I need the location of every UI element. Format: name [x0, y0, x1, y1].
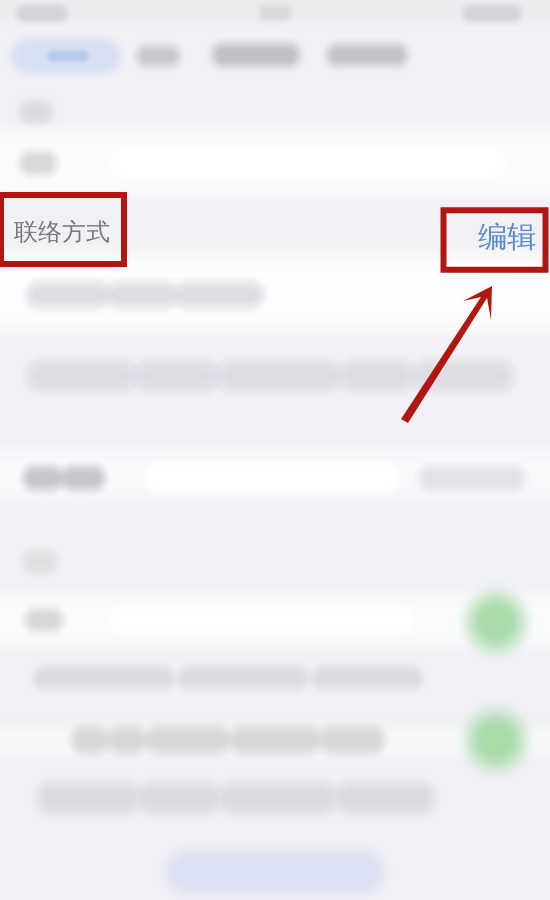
staticText: 联络方式 — [14, 217, 110, 247]
staticText: 编辑 — [478, 219, 536, 255]
button[interactable]: 编辑 — [478, 219, 536, 255]
